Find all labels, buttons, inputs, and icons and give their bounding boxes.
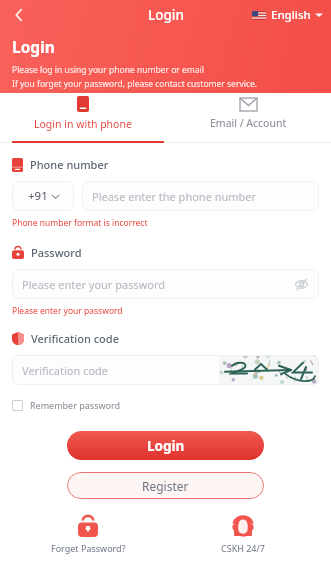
staticText: CSKH 24/7: [221, 542, 266, 554]
staticText: Login in with phone: [34, 117, 132, 131]
button[interactable]: CSKH 24/7: [195, 515, 291, 554]
button[interactable]: Show password: [292, 275, 310, 293]
staticText: Login: [148, 6, 184, 24]
staticText: Login: [147, 437, 185, 455]
staticText: Remember password: [30, 399, 121, 411]
button[interactable]: Refresh verification code: [219, 355, 319, 385]
staticText: Password: [31, 245, 82, 260]
staticText: Register: [142, 478, 189, 494]
button[interactable]: English: [252, 7, 323, 23]
button[interactable]: Please enter the phone number: [82, 181, 319, 211]
staticText: Please log in using your phone number or…: [12, 64, 204, 76]
staticText: If you forget your password, please cont…: [12, 78, 258, 90]
staticText: Phone number format is incorrect: [12, 217, 148, 229]
button[interactable]: Verification code: [12, 355, 319, 385]
button[interactable]: Login: [67, 431, 264, 460]
staticText: Verification code: [31, 331, 119, 346]
button[interactable]: Email / Account: [165, 93, 331, 143]
button[interactable]: Forget Password?: [40, 515, 136, 554]
button[interactable]: Back: [4, 0, 34, 30]
button[interactable]: Please enter your password: [12, 269, 319, 299]
staticText: Verification code: [22, 363, 109, 378]
button[interactable]: Register: [67, 472, 264, 499]
staticText: English: [271, 7, 311, 23]
staticText: +91: [28, 188, 48, 204]
staticText: Please enter your password: [22, 277, 166, 292]
staticText: Please enter your password: [12, 305, 123, 317]
button[interactable]: +91: [12, 181, 74, 211]
staticText: Phone number: [30, 157, 109, 172]
staticText: Login: [12, 36, 55, 57]
staticText: Email / Account: [210, 116, 287, 130]
button[interactable]: Remember password: [12, 399, 121, 411]
button[interactable]: Login in with phone: [0, 93, 165, 143]
staticText: Forget Password?: [51, 542, 126, 554]
staticText: Please enter the phone number: [92, 189, 257, 204]
